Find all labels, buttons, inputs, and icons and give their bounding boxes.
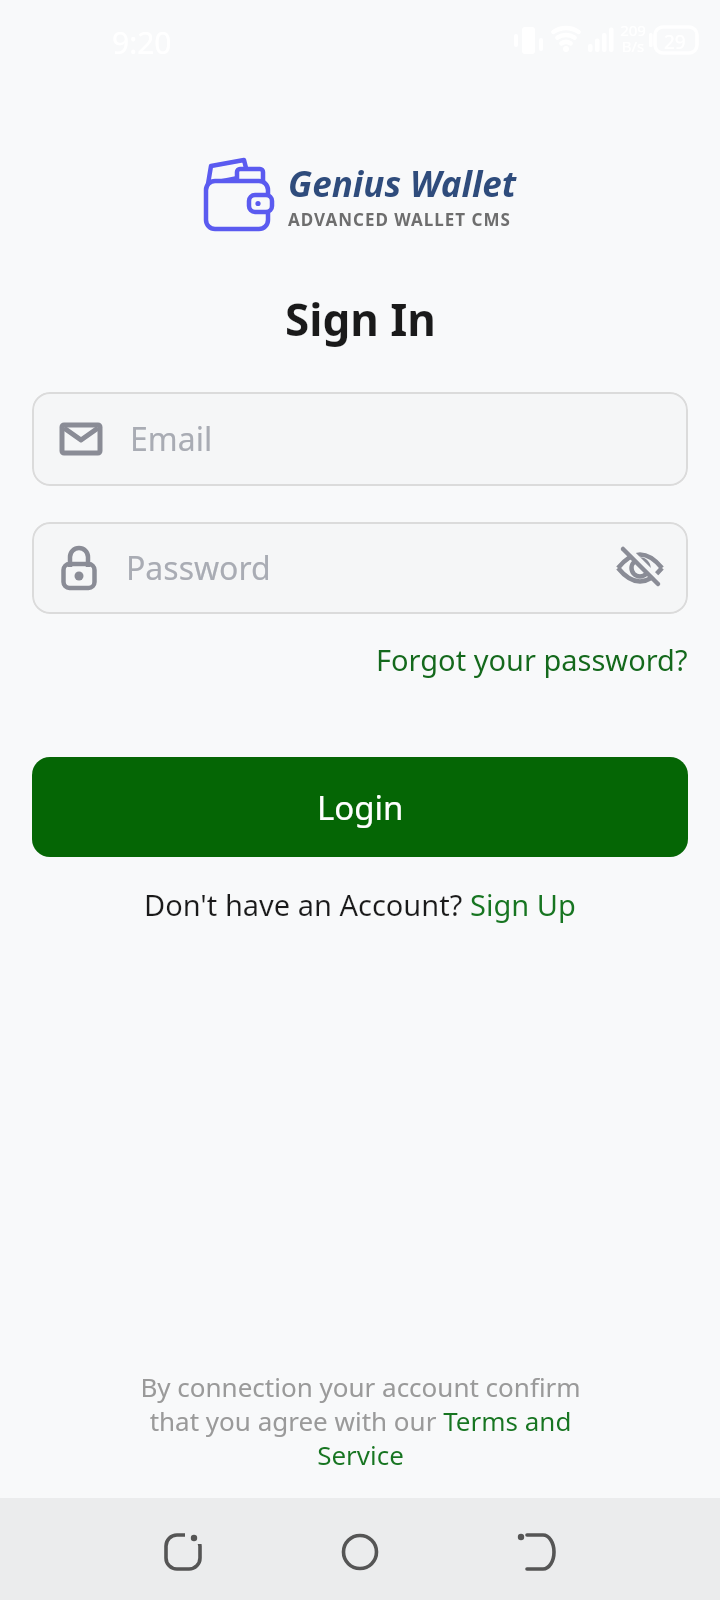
button[interactable]: [610, 538, 670, 598]
button[interactable]: [511, 1523, 563, 1575]
button[interactable]: Password: [32, 522, 688, 614]
button[interactable]: Email: [32, 392, 688, 486]
staticText: Don't have an Account?: [144, 885, 470, 924]
staticText: Login: [317, 785, 404, 830]
staticText: Genius Wallet: [288, 160, 517, 208]
button[interactable]: [157, 1523, 209, 1575]
button[interactable]: Sign Up: [470, 885, 576, 924]
staticText: Sign In: [285, 289, 436, 349]
button[interactable]: Login: [32, 757, 688, 857]
staticText: Email: [130, 417, 213, 461]
button[interactable]: Forgot your password?: [376, 640, 688, 679]
staticText: ADVANCED WALLET CMS: [288, 208, 511, 231]
button[interactable]: [334, 1523, 386, 1575]
button[interactable]: By connection your account confirm that …: [140, 1369, 581, 1472]
staticText: Password: [126, 546, 271, 590]
